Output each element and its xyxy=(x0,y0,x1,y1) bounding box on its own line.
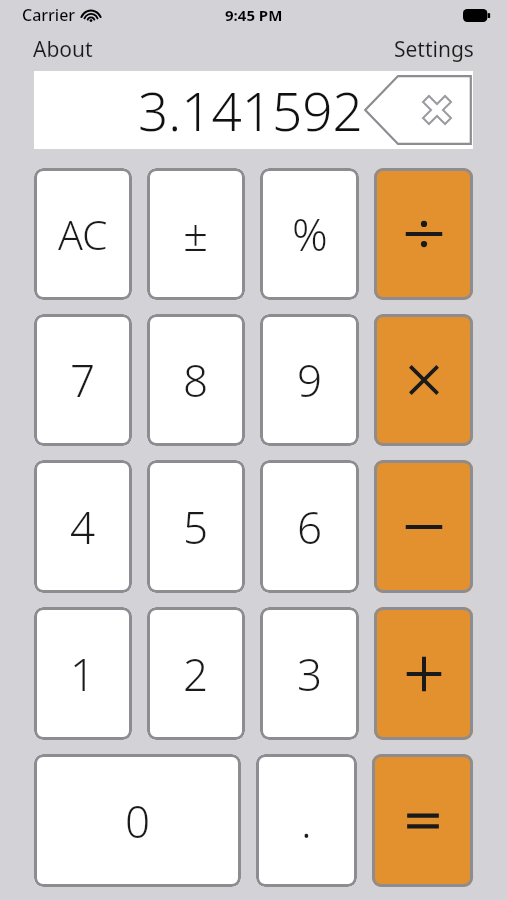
button[interactable]: 8 xyxy=(147,314,245,446)
button[interactable]: Minus xyxy=(374,460,473,593)
staticText: 2 xyxy=(183,644,209,704)
button[interactable]: 5 xyxy=(147,460,245,593)
staticText: 6 xyxy=(297,497,323,557)
staticText: 9:45 PM xyxy=(225,5,283,25)
button[interactable]: Backspace, clear entry xyxy=(363,71,473,149)
staticText: Carrier xyxy=(22,4,76,26)
staticText: 5 xyxy=(183,497,209,557)
staticText: 3 xyxy=(297,644,323,704)
staticText: ± xyxy=(183,204,209,264)
staticText: 4 xyxy=(70,497,96,557)
staticText: 7 xyxy=(70,350,96,410)
button[interactable]: Plus xyxy=(374,607,473,740)
button[interactable]: 1 xyxy=(34,607,132,740)
staticText: 0 xyxy=(125,791,151,851)
staticText: 9 xyxy=(297,350,323,410)
button[interactable]: 3 xyxy=(260,607,359,740)
staticText: 1 xyxy=(70,644,96,704)
button[interactable]: Divide xyxy=(374,168,473,300)
button[interactable]: Equals xyxy=(372,754,473,887)
staticText: % xyxy=(292,204,328,264)
button[interactable]: About xyxy=(29,32,97,67)
button[interactable]: AC xyxy=(34,168,132,300)
button[interactable]: 9 xyxy=(260,314,359,446)
staticText: 8 xyxy=(183,350,209,410)
staticText: AC xyxy=(58,206,108,262)
staticText: 3.141592 xyxy=(138,74,363,146)
button[interactable]: ± xyxy=(147,168,245,300)
button[interactable]: Multiply xyxy=(374,314,473,446)
button[interactable]: 7 xyxy=(34,314,132,446)
button[interactable]: 4 xyxy=(34,460,132,593)
button[interactable]: 6 xyxy=(260,460,359,593)
button[interactable]: Settings xyxy=(390,32,478,67)
button[interactable]: 2 xyxy=(147,607,245,740)
button[interactable]: % xyxy=(260,168,359,300)
staticText: About xyxy=(33,35,93,64)
button[interactable]: 0 xyxy=(34,754,241,887)
staticText: Settings xyxy=(394,35,474,64)
button[interactable]: . xyxy=(256,754,357,887)
staticText: . xyxy=(301,791,312,851)
